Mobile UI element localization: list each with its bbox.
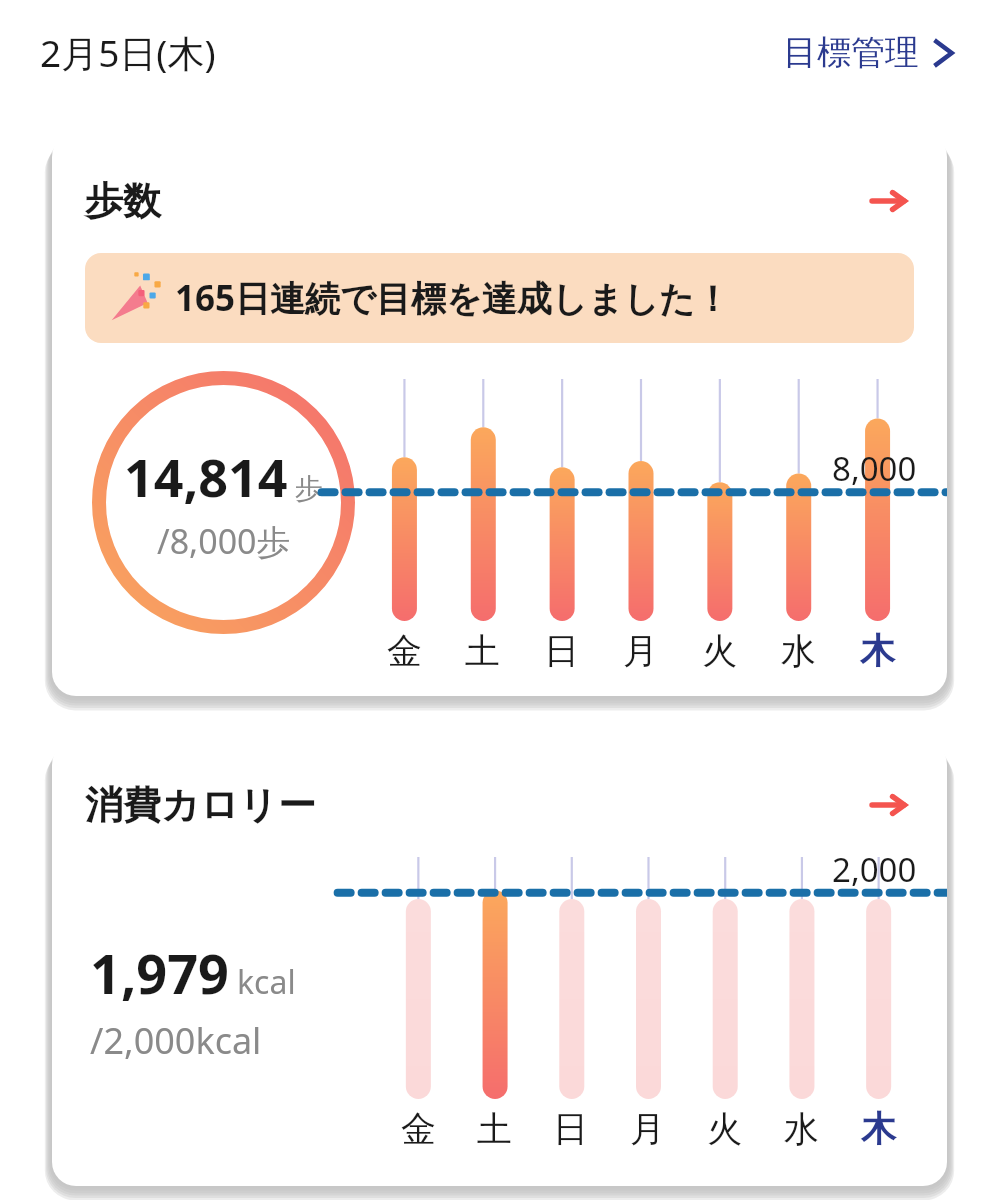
staticText: 火 <box>702 629 737 673</box>
staticText: 金 <box>401 1107 436 1151</box>
staticText: 8,000 <box>832 446 917 491</box>
staticText: 目標管理 <box>783 31 919 74</box>
staticText: 土 <box>477 1107 512 1151</box>
button[interactable]: 消費カロリー <box>52 741 947 1186</box>
staticText: 2月5日(木) <box>40 27 216 78</box>
button[interactable]: 165日連続で目標を達成しました！ <box>85 253 914 343</box>
staticText: 日 <box>553 1107 588 1151</box>
staticText: kcal <box>237 960 296 1004</box>
staticText: 水 <box>784 1107 819 1151</box>
button[interactable]: 消費カロリーの詳細へ <box>862 779 914 831</box>
staticText: 火 <box>707 1107 742 1151</box>
staticText: 月 <box>623 629 658 673</box>
staticText: 14,814 <box>124 441 288 512</box>
button[interactable]: 目標管理 <box>779 25 959 80</box>
staticText: /2,000kcal <box>90 1016 262 1065</box>
staticText: 165日連続で目標を達成しました！ <box>175 274 730 322</box>
staticText: 金 <box>387 629 422 673</box>
staticText: 2,000 <box>832 847 917 892</box>
button[interactable]: 歩数の詳細へ <box>862 175 914 227</box>
staticText: 木 <box>861 1107 896 1151</box>
staticText: /8,000歩 <box>157 518 291 564</box>
staticText: 消費カロリー <box>85 781 316 829</box>
staticText: 歩 <box>295 471 323 506</box>
staticText: 水 <box>781 629 816 673</box>
staticText: 月 <box>630 1107 665 1151</box>
staticText: 歩数 <box>85 177 161 225</box>
staticText: 1,979 <box>90 936 229 1010</box>
staticText: 日 <box>544 629 579 673</box>
button[interactable]: 歩数 <box>52 133 947 696</box>
staticText: 土 <box>465 629 500 673</box>
staticText: 木 <box>860 629 895 673</box>
